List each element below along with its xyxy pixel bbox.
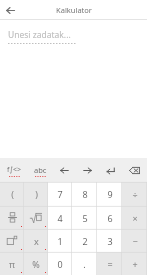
button[interactable]: + <box>122 252 147 275</box>
button[interactable]: 7 <box>48 182 72 206</box>
staticText: − <box>132 235 138 247</box>
button[interactable]: Move left <box>53 158 76 182</box>
staticText: Unesi zadatak... <box>8 29 71 41</box>
button[interactable]: 6 <box>97 206 122 229</box>
button[interactable]: 0 <box>48 252 72 275</box>
staticText: = <box>107 258 113 270</box>
button[interactable]: Fraction <box>0 206 24 229</box>
button[interactable]: 8 <box>72 182 97 206</box>
staticText: 8 <box>82 188 88 200</box>
button[interactable]: π <box>0 252 24 275</box>
button[interactable]: x <box>24 229 48 252</box>
staticText: π <box>9 258 15 270</box>
staticText: 9 <box>107 188 113 200</box>
button[interactable]: 9 <box>97 182 122 206</box>
button[interactable]: Power <box>0 229 24 252</box>
button[interactable]: . <box>72 252 97 275</box>
staticText: + <box>132 258 138 270</box>
staticText: 3 <box>107 235 113 247</box>
button[interactable]: Enter <box>99 158 122 182</box>
button[interactable]: − <box>122 229 147 252</box>
button[interactable]: = <box>97 252 122 275</box>
staticText: . <box>83 258 86 270</box>
button[interactable]: 2 <box>72 229 97 252</box>
button[interactable]: × <box>122 206 147 229</box>
staticText: 6 <box>107 212 113 224</box>
button[interactable]: Move right <box>76 158 99 182</box>
button[interactable]: 1 <box>48 229 72 252</box>
staticText: abc <box>34 165 47 175</box>
button[interactable]: ( <box>0 182 24 206</box>
button[interactable]: 5 <box>72 206 97 229</box>
staticText: x <box>34 235 39 247</box>
staticText: ) <box>35 188 38 200</box>
button[interactable]: 4 <box>48 206 72 229</box>
staticText: Kalkulator <box>56 5 92 15</box>
staticText: ÷ <box>132 188 138 200</box>
staticText: 1 <box>57 235 63 247</box>
button[interactable]: Math symbols <box>0 158 28 182</box>
button[interactable]: Letters <box>28 158 53 182</box>
staticText: 4 <box>57 212 63 224</box>
staticText: 7 <box>57 188 63 200</box>
staticText: 0 <box>57 258 63 270</box>
button[interactable]: Back <box>0 0 20 20</box>
staticText: × <box>132 212 138 224</box>
button[interactable]: ) <box>24 182 48 206</box>
button[interactable]: Square root <box>24 206 48 229</box>
button[interactable]: % <box>24 252 48 275</box>
button[interactable]: Backspace <box>122 158 147 182</box>
staticText: % <box>32 258 40 270</box>
button[interactable]: ÷ <box>122 182 147 206</box>
button[interactable]: 3 <box>97 229 122 252</box>
staticText: f∫<> <box>7 165 22 175</box>
staticText: ( <box>11 188 14 200</box>
staticText: 5 <box>82 212 88 224</box>
staticText: 2 <box>82 235 88 247</box>
